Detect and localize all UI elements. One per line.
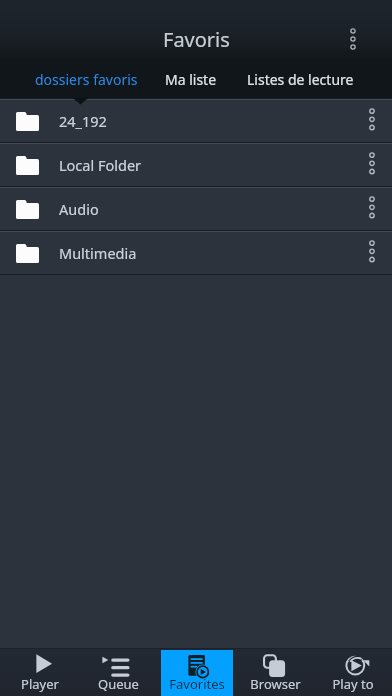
staticText: Favoris [163,26,230,53]
staticText: Favorites [169,675,225,693]
staticText: Player [21,675,59,693]
staticText: Multimedia [59,243,137,263]
button[interactable]: Ma liste [165,60,217,98]
button[interactable]: Listes de lecture [247,60,354,98]
staticText: Local Folder [59,155,142,175]
button[interactable]: Local Folder [0,144,392,186]
button[interactable]: More options [314,27,392,60]
button[interactable]: Item options [352,100,392,142]
staticText: Audio [59,199,99,219]
staticText: Queue [98,675,139,693]
button[interactable]: Queue [79,649,158,696]
staticText: Browser [250,675,301,693]
button[interactable]: dossiers favoris [35,60,138,98]
button[interactable]: Favorites [158,649,236,696]
button[interactable]: Play to [314,649,392,696]
button[interactable]: Audio [0,188,392,230]
button[interactable]: Item options [352,232,392,274]
button[interactable]: 24_192 [0,100,392,142]
button[interactable]: Item options [352,188,392,230]
staticText: dossiers favoris [35,70,138,89]
staticText: Play to [332,675,374,693]
staticText: Ma liste [165,70,217,89]
button[interactable]: Browser [236,649,314,696]
staticText: Listes de lecture [247,70,354,89]
staticText: 24_192 [59,111,107,131]
button[interactable]: Item options [352,144,392,186]
button[interactable]: Player [0,649,79,696]
button[interactable]: Multimedia [0,232,392,274]
